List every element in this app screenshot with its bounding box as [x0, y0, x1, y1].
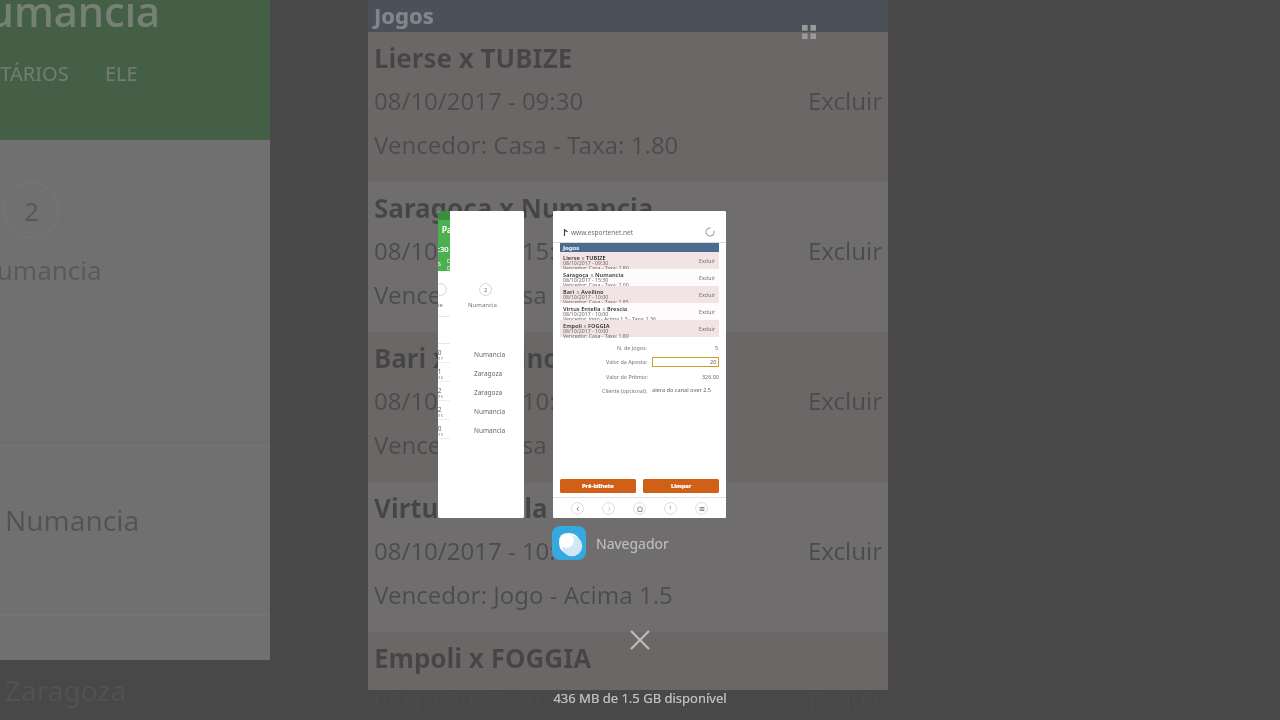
- staticText: Excluir: [808, 84, 883, 117]
- staticText: Numancia: [474, 426, 506, 435]
- staticText: Excluir: [699, 291, 716, 298]
- staticText: Brescia: [607, 305, 628, 313]
- button[interactable]: Saragoça: [560, 269, 719, 286]
- staticText: Saragoça x Numancia: [374, 190, 654, 225]
- staticText: Navegador: [596, 534, 669, 553]
- staticText: Virtus Entella: [563, 305, 601, 313]
- staticText: Numancia: [0, 252, 102, 287]
- staticText: Lierse: [563, 254, 580, 262]
- staticText: Pré-bilhete: [582, 482, 614, 490]
- staticText: ate: [438, 301, 443, 309]
- staticText: x: [589, 271, 595, 279]
- staticText: N. de Jogos:: [617, 344, 648, 351]
- staticText: Numancia: [0, 0, 161, 39]
- staticText: - 1: [438, 367, 442, 376]
- button[interactable]: back: [571, 502, 584, 515]
- staticText: Vencedor: Casa - Taxa: 2.00: [374, 278, 679, 311]
- staticText: x: [575, 288, 581, 296]
- staticText: Vencedor: Jogo - Acima 1.5: [374, 578, 673, 611]
- staticText: :30: [438, 244, 449, 254]
- staticText: Cliente (opcional):: [602, 387, 648, 394]
- staticText: Empoli x FOGGIA: [374, 640, 592, 675]
- staticText: 08/10/2017 - 10:00: [563, 293, 609, 300]
- staticText: 08/10/2017 - 10:00: [563, 327, 609, 334]
- button[interactable]: Limpar: [643, 479, 719, 493]
- staticText: 08/10/2017 - 10:00: [563, 310, 609, 317]
- staticText: OS: [438, 261, 441, 268]
- staticText: - 0: [438, 424, 442, 433]
- staticText: Empoli: [563, 322, 582, 330]
- staticText: Excluir: [808, 684, 883, 717]
- staticText: Limpar: [671, 482, 692, 490]
- button[interactable]: www.esportenet.net: [553, 211, 726, 518]
- staticText: COMENTÁRIOS: [0, 60, 69, 87]
- staticText: Partida: [442, 224, 470, 235]
- button[interactable]: www.esportenet.net: [553, 222, 726, 242]
- staticText: x: [582, 322, 588, 330]
- staticText: Vencedor: Casa - Taxa: 1.80: [563, 264, 629, 271]
- staticText: Numancia: [474, 350, 506, 359]
- button[interactable]: Virtus Entella: [560, 303, 719, 320]
- staticText: Saragoça: [563, 271, 589, 279]
- staticText: Avellino: [581, 288, 604, 296]
- staticText: Excluir: [808, 384, 883, 417]
- staticText: Vencedor: Casa - Taxa: 1.80: [374, 128, 679, 161]
- staticText: Numancia: [595, 271, 624, 279]
- staticText: Excluir: [699, 274, 716, 281]
- staticText: Zaragoza: [5, 671, 127, 709]
- staticText: 436 MB de 1.5 GB disponível: [0, 689, 1280, 707]
- staticText: 1: [669, 505, 672, 512]
- staticText: Vencedor: Casa - Taxa: 2.00: [563, 281, 629, 288]
- staticText: 08/10/2017 - 10:00: [374, 384, 584, 417]
- staticText: 08/10/2017 - 15:30: [563, 276, 609, 283]
- staticText: Jogos: [374, 0, 434, 30]
- button[interactable]: Empoli: [560, 320, 719, 337]
- staticText: 08/10/2017 - 09:30: [374, 84, 584, 117]
- staticText: - 0: [438, 348, 442, 357]
- staticText: Excluir: [699, 325, 716, 332]
- staticText: Numancia: [474, 407, 506, 416]
- button[interactable]: menu: [695, 502, 708, 515]
- button[interactable]: Close all: [622, 622, 658, 658]
- staticText: 08/10/2017 - 15:30: [374, 234, 584, 267]
- staticText: x: [601, 305, 607, 313]
- staticText: Bari x Avellino: [374, 340, 560, 375]
- staticText: 2: [24, 193, 39, 228]
- button[interactable]: All apps: [794, 17, 824, 47]
- staticText: - 2: [438, 405, 442, 414]
- staticText: Excluir: [699, 308, 716, 315]
- staticText: Vencedor: Casa - Taxa: 1.85: [563, 298, 629, 305]
- staticText: Valor da Aposta:: [606, 358, 648, 365]
- staticText: 08/10/2017 - 09:30: [563, 259, 609, 266]
- button[interactable]: Partida: [438, 211, 524, 518]
- staticText: Bari: [563, 288, 575, 296]
- staticText: 2016: [438, 375, 444, 380]
- staticText: x: [580, 254, 586, 262]
- button[interactable]: Pré-bilhete: [560, 479, 636, 493]
- staticText: Excluir: [808, 534, 883, 567]
- staticText: 2015: [438, 413, 444, 418]
- staticText: www.esportenet.net: [571, 228, 634, 237]
- button[interactable]: Bari: [560, 286, 719, 303]
- staticText: Virtus Entella x Brescia: [374, 490, 670, 525]
- button[interactable]: tabs: [664, 502, 677, 515]
- button[interactable]: home: [633, 502, 646, 515]
- staticText: Valor do Prêmio:: [606, 373, 648, 380]
- staticText: Zaragoza: [474, 369, 503, 378]
- button[interactable]: forward: [602, 502, 615, 515]
- staticText: - 2: [438, 386, 442, 395]
- staticText: Zaragoza: [474, 388, 503, 397]
- staticText: Excluir: [808, 234, 883, 267]
- button[interactable]: Lierse: [560, 252, 719, 269]
- button[interactable]: 20: [652, 357, 719, 367]
- staticText: 08/10/2017 - 10:00: [374, 534, 584, 567]
- button[interactable]: Navegador: [552, 525, 669, 561]
- staticText: 326.00: [702, 373, 719, 380]
- staticText: alera do canal over 2.5: [652, 386, 712, 394]
- staticText: 20: [710, 358, 717, 366]
- staticText: ELE: [105, 60, 138, 87]
- staticText: Vencedor: Casa - Taxa: 1.85: [374, 428, 679, 461]
- staticText: Lierse x TUBIZE: [374, 40, 573, 75]
- staticText: 2016: [438, 394, 444, 399]
